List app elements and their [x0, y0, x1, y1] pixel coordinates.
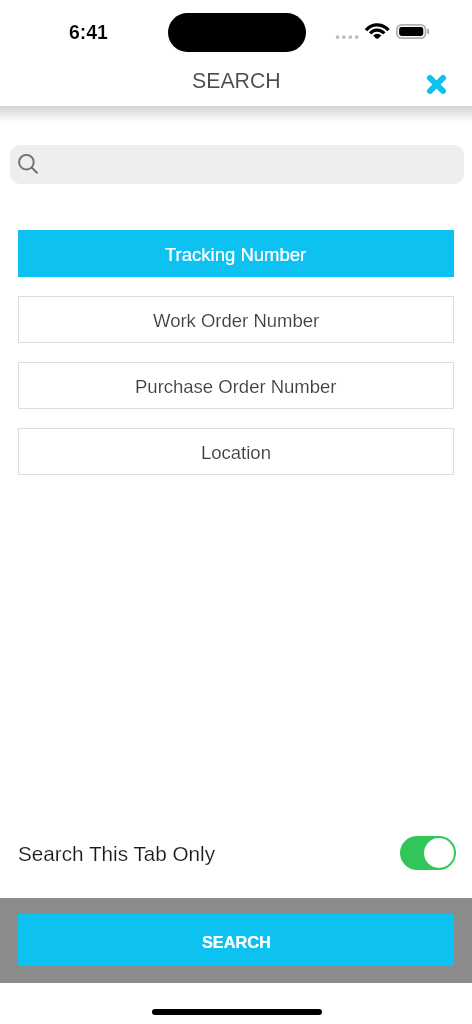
staticText: Tracking Number [165, 244, 307, 265]
button[interactable]: Location [18, 428, 454, 475]
staticText: 6:41 [69, 21, 108, 43]
button[interactable]: Purchase Order Number [18, 362, 454, 409]
staticText: Location [201, 442, 271, 463]
staticText: Work Order Number [153, 310, 320, 331]
staticText: Search This Tab Only [18, 842, 216, 865]
staticText: SEARCH [202, 933, 271, 951]
button[interactable]: Search This Tab Only toggle [400, 836, 456, 870]
button[interactable]: SEARCH [18, 914, 454, 966]
staticText: SEARCH [192, 69, 281, 93]
button[interactable]: Tracking Number [18, 230, 454, 277]
staticText: Purchase Order Number [135, 376, 337, 397]
button[interactable]: Close [418, 66, 454, 102]
button[interactable]: Work Order Number [18, 296, 454, 343]
button[interactable]: Search field [10, 145, 464, 184]
